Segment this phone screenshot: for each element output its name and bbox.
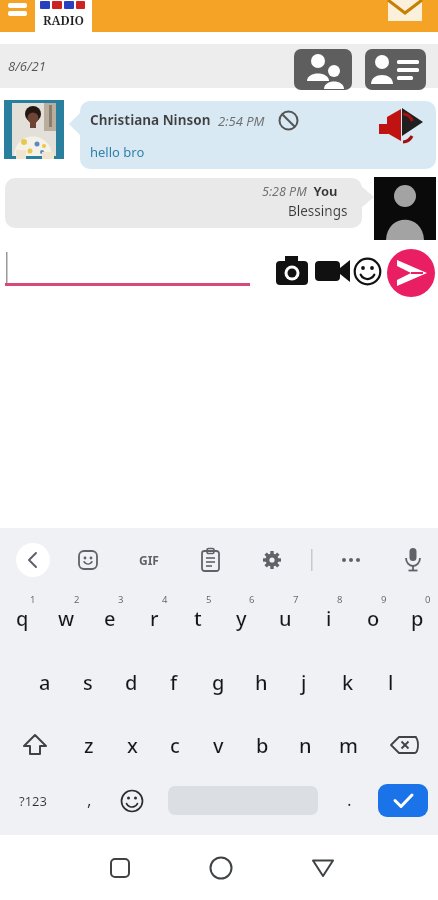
button[interactable]: p [396,592,438,644]
button[interactable] [374,177,436,240]
button[interactable]: e [89,592,131,644]
button[interactable]: i [308,592,350,644]
staticText: 9 [381,593,387,606]
button[interactable]: . [338,780,360,818]
staticText: , [87,788,92,811]
button[interactable] [5,178,362,228]
button[interactable] [199,547,222,573]
button[interactable] [261,549,283,571]
button[interactable] [313,255,353,285]
staticText: s [83,669,93,696]
button[interactable]: u [264,592,306,644]
staticText: v [213,732,224,759]
staticText: 8/6/21 [8,57,46,75]
button[interactable] [16,543,50,577]
button[interactable]: GIF [134,551,163,569]
button[interactable] [80,101,436,169]
button[interactable] [386,0,424,22]
button[interactable] [272,252,312,288]
staticText: 8 [337,593,343,606]
staticText: g [212,669,225,696]
staticText: 2:54 PM [218,112,265,130]
staticText: 7 [293,593,299,606]
staticText: d [125,669,138,696]
button[interactable]: v [197,719,239,771]
staticText: 4 [162,593,168,606]
button[interactable]: , [78,780,100,818]
button[interactable]: a [24,656,66,708]
staticText: GIF [139,552,159,568]
button[interactable] [206,853,236,883]
button[interactable] [376,104,426,146]
staticText: ?123 [19,792,47,810]
button[interactable] [14,726,56,766]
button[interactable]: q [1,592,43,644]
staticText: j [301,669,307,696]
staticText: f [170,669,178,696]
staticText: r [150,605,159,632]
staticText: Christiana Ninson [90,111,211,129]
staticText: 0 [425,593,431,606]
staticText: x [127,732,138,759]
button[interactable]: z [68,719,110,771]
button[interactable]: f [153,656,195,708]
button[interactable]: ?123 [11,782,55,820]
staticText: . [347,788,352,811]
button[interactable]: k [327,656,369,708]
button[interactable]: RADIO [35,0,92,32]
staticText: 6 [249,593,255,606]
button[interactable]: h [240,656,282,708]
button[interactable] [77,549,99,571]
staticText: 5 [206,593,212,606]
button[interactable] [308,853,338,883]
button[interactable]: x [111,719,153,771]
button[interactable] [337,552,365,568]
button[interactable] [0,0,34,32]
staticText: b [256,732,269,759]
button[interactable] [4,100,64,159]
button[interactable]: g [197,656,239,708]
staticText: RADIO [43,12,85,28]
staticText: p [411,605,424,632]
staticText: 3 [118,593,124,606]
staticText: o [367,605,380,632]
staticText: i [326,605,332,632]
button[interactable] [387,249,435,297]
button[interactable]: w [45,592,87,644]
button[interactable]: t [177,592,219,644]
staticText: e [104,605,116,632]
staticText: u [279,605,292,632]
staticText: h [255,669,268,696]
staticText: hello bro [90,143,145,161]
button[interactable]: y [220,592,262,644]
staticText: w [58,605,75,632]
button[interactable] [378,784,428,817]
button[interactable]: s [67,656,109,708]
button[interactable]: j [283,656,325,708]
button[interactable] [119,788,145,814]
staticText: c [170,732,180,759]
staticText: Blessings [288,202,348,220]
staticText: 2 [74,593,80,606]
button[interactable]: n [284,719,326,771]
button[interactable] [402,546,424,574]
button[interactable] [105,853,135,883]
staticText: y [236,605,247,632]
button[interactable] [294,49,352,90]
button[interactable]: l [370,656,412,708]
button[interactable] [353,257,382,286]
staticText: a [39,669,51,696]
button[interactable] [365,49,426,90]
staticText: z [84,732,94,759]
button[interactable] [383,726,425,766]
button[interactable]: b [241,719,283,771]
button[interactable]: r [133,592,175,644]
button[interactable]: m [327,719,369,771]
staticText: l [388,669,394,696]
staticText: q [16,605,29,632]
button[interactable]: c [154,719,196,771]
button[interactable]: o [352,592,394,644]
button[interactable]: d [110,656,152,708]
